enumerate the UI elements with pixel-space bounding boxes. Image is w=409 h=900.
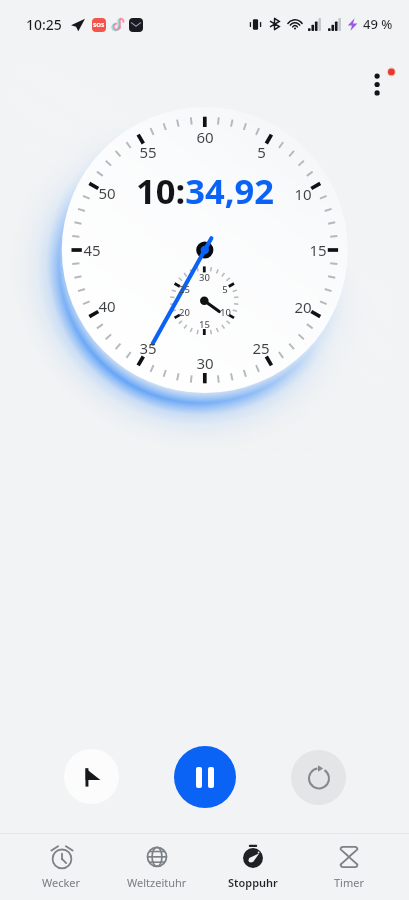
staticText: Wecker	[42, 875, 81, 890]
staticText: 10:34,92	[136, 167, 274, 214]
button[interactable]: Pause	[174, 746, 236, 808]
staticText: 20	[294, 297, 312, 317]
staticText: 10	[220, 306, 231, 319]
button[interactable]: Zurücksetzen	[291, 750, 346, 805]
staticText: 25	[252, 338, 270, 358]
staticText: 10:25	[26, 15, 62, 34]
staticText: Timer	[334, 875, 364, 890]
button[interactable]: Timer	[301, 834, 397, 900]
staticText: 15	[199, 318, 210, 331]
staticText: 30	[196, 353, 214, 373]
button[interactable]: Weitere Optionen	[353, 60, 401, 108]
button[interactable]: Weltzeituhr	[109, 834, 205, 900]
staticText: 10	[294, 184, 312, 204]
staticText: 50	[98, 183, 116, 203]
staticText: 35	[139, 338, 157, 358]
staticText: 20	[179, 306, 190, 319]
staticText: 5	[222, 283, 228, 296]
staticText: 55	[139, 142, 157, 162]
button[interactable]: Runde	[64, 749, 119, 804]
staticText: 60	[196, 127, 214, 147]
staticText: 49 %	[363, 15, 393, 33]
staticText: Weltzeituhr	[127, 875, 187, 890]
staticText: 40	[98, 296, 116, 316]
staticText: SOS	[93, 21, 105, 29]
button[interactable]: Stoppuhr	[205, 834, 301, 900]
staticText: 30	[199, 271, 210, 284]
staticText: 5	[257, 142, 266, 162]
staticText: Stoppuhr	[228, 875, 278, 890]
button[interactable]: Wecker	[14, 834, 109, 900]
staticText: 15	[309, 240, 327, 260]
staticText: 45	[83, 240, 101, 260]
staticText: 25	[179, 283, 190, 296]
